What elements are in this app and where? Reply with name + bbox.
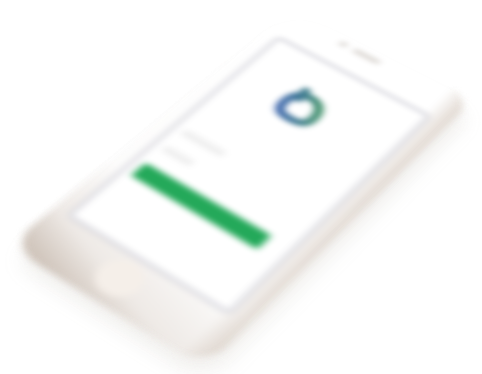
button[interactable]: Home xyxy=(84,252,154,305)
button[interactable] xyxy=(130,162,272,250)
button[interactable]: Home xyxy=(8,6,474,369)
